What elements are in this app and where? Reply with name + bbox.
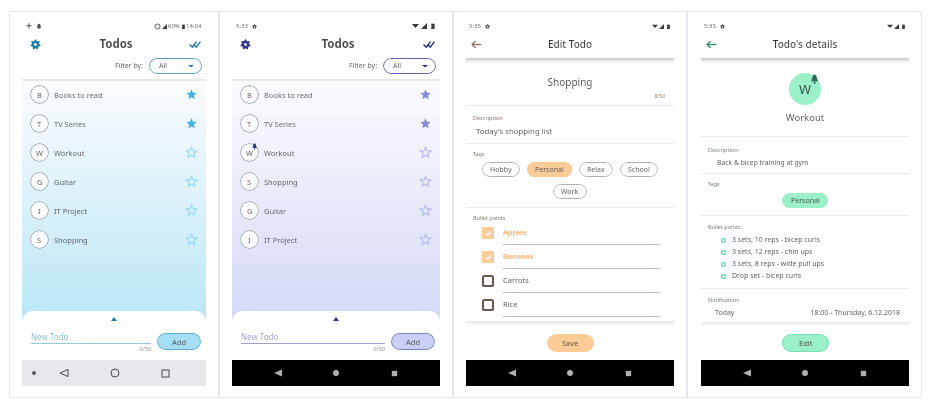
staticText: Apples [503, 227, 527, 237]
button[interactable]: I [232, 225, 440, 254]
staticText: Bullet points: [708, 223, 742, 230]
staticText: W [36, 148, 43, 158]
button[interactable]: Favourite [418, 232, 433, 247]
button[interactable]: Settings [22, 33, 48, 55]
staticText: Edit [799, 338, 813, 348]
staticText: 18:00 - Thursday, 6.12.2018 [735, 308, 900, 318]
staticText: Personal [791, 196, 820, 206]
staticText: TV Series [264, 119, 418, 129]
button[interactable]: Edit [782, 334, 829, 352]
button[interactable]: All [383, 58, 436, 74]
staticText: 3 sets, 8 reps - wide pull ups [732, 259, 825, 269]
staticText: Carrots [503, 275, 529, 285]
staticText: 69% [168, 22, 180, 30]
staticText: Todos [258, 36, 418, 52]
button[interactable]: Home [307, 365, 365, 381]
staticText: G [37, 177, 43, 187]
staticText: Workout [264, 148, 418, 158]
staticText: Workout [54, 148, 184, 158]
button[interactable]: Back [249, 365, 307, 381]
button[interactable]: Toggle Rice [482, 299, 494, 311]
button[interactable]: Favourite [418, 116, 433, 131]
staticText: New Todo [31, 331, 69, 342]
button[interactable]: Settings [232, 33, 258, 55]
button[interactable]: Save [547, 334, 594, 352]
staticText: Shopping [264, 177, 418, 187]
button[interactable]: Home [89, 365, 140, 381]
staticText: 0/50 [241, 345, 385, 352]
button[interactable]: S [22, 225, 206, 254]
staticText: New Todo [241, 331, 279, 342]
button[interactable]: All [149, 58, 202, 74]
staticText: Bananas [503, 251, 534, 261]
button[interactable]: G [232, 196, 440, 225]
button[interactable]: Toggle Bananas [482, 251, 494, 263]
button[interactable]: Home [541, 365, 599, 381]
staticText: W [799, 80, 812, 98]
button[interactable]: Favourite [418, 145, 433, 160]
button[interactable]: Recents [834, 365, 892, 381]
button[interactable]: I [22, 196, 206, 225]
staticText: Filter by: [349, 61, 378, 71]
button[interactable]: Relax [579, 162, 613, 177]
button[interactable]: Favourite [418, 174, 433, 189]
staticText: Filter by: [115, 61, 144, 71]
staticText: Workout [701, 111, 909, 124]
staticText: Tags [473, 150, 485, 157]
button[interactable]: B [232, 80, 440, 109]
button[interactable]: Recents [599, 365, 657, 381]
button[interactable]: T [22, 109, 206, 138]
button[interactable]: Favourite [184, 174, 199, 189]
staticText: TV Series [54, 119, 184, 129]
staticText: 5:35 [704, 22, 716, 30]
button[interactable]: Favourite [184, 145, 199, 160]
staticText: S [247, 177, 252, 187]
button[interactable]: Back [466, 34, 486, 54]
button[interactable]: Home [776, 365, 834, 381]
button[interactable]: Mark all done [418, 33, 440, 55]
button[interactable]: W [232, 138, 440, 167]
staticText: B [247, 90, 252, 100]
button[interactable]: Add [157, 333, 201, 350]
button[interactable]: G [22, 167, 206, 196]
button[interactable]: Favourite [418, 203, 433, 218]
button[interactable]: Recents [365, 365, 423, 381]
button[interactable]: Favourite [418, 87, 433, 102]
button[interactable]: Hobby [482, 162, 520, 177]
button[interactable]: Favourite [184, 87, 199, 102]
button[interactable]: B [22, 80, 206, 109]
button[interactable]: Mark all done [184, 33, 206, 55]
button[interactable]: Back [718, 365, 776, 381]
staticText: Books to read [264, 90, 418, 100]
button[interactable]: Work [553, 184, 587, 199]
button[interactable]: Recents [140, 365, 191, 381]
staticText: Today's shopping list [476, 126, 553, 137]
button[interactable]: Favourite [184, 232, 199, 247]
button[interactable]: Favourite [184, 203, 199, 218]
staticText: Bullet points [473, 214, 506, 221]
staticText: I [248, 235, 251, 245]
staticText: Save [562, 338, 579, 348]
staticText: S [37, 235, 42, 245]
staticText: Back & bicep training at gym [717, 158, 809, 167]
staticText: School [628, 165, 650, 175]
button[interactable]: Toggle Apples [482, 227, 494, 239]
button[interactable]: Back [483, 365, 541, 381]
button[interactable]: Add [391, 333, 435, 350]
staticText: Relax [587, 165, 605, 175]
staticText: B [37, 90, 42, 100]
button[interactable]: W [22, 138, 206, 167]
button[interactable]: Personal [782, 193, 828, 208]
button[interactable]: Favourite [184, 116, 199, 131]
button[interactable]: Personal [527, 162, 572, 177]
button[interactable]: Back [701, 34, 721, 54]
staticText: Today [715, 308, 735, 318]
staticText: IT Project [54, 206, 184, 216]
button[interactable]: T [232, 109, 440, 138]
staticText: Edit Todo [486, 37, 654, 51]
button[interactable]: Back [38, 365, 89, 381]
button[interactable]: Toggle Carrots [482, 275, 494, 287]
button[interactable]: S [232, 167, 440, 196]
staticText: Personal [535, 165, 564, 175]
button[interactable]: School [620, 162, 658, 177]
